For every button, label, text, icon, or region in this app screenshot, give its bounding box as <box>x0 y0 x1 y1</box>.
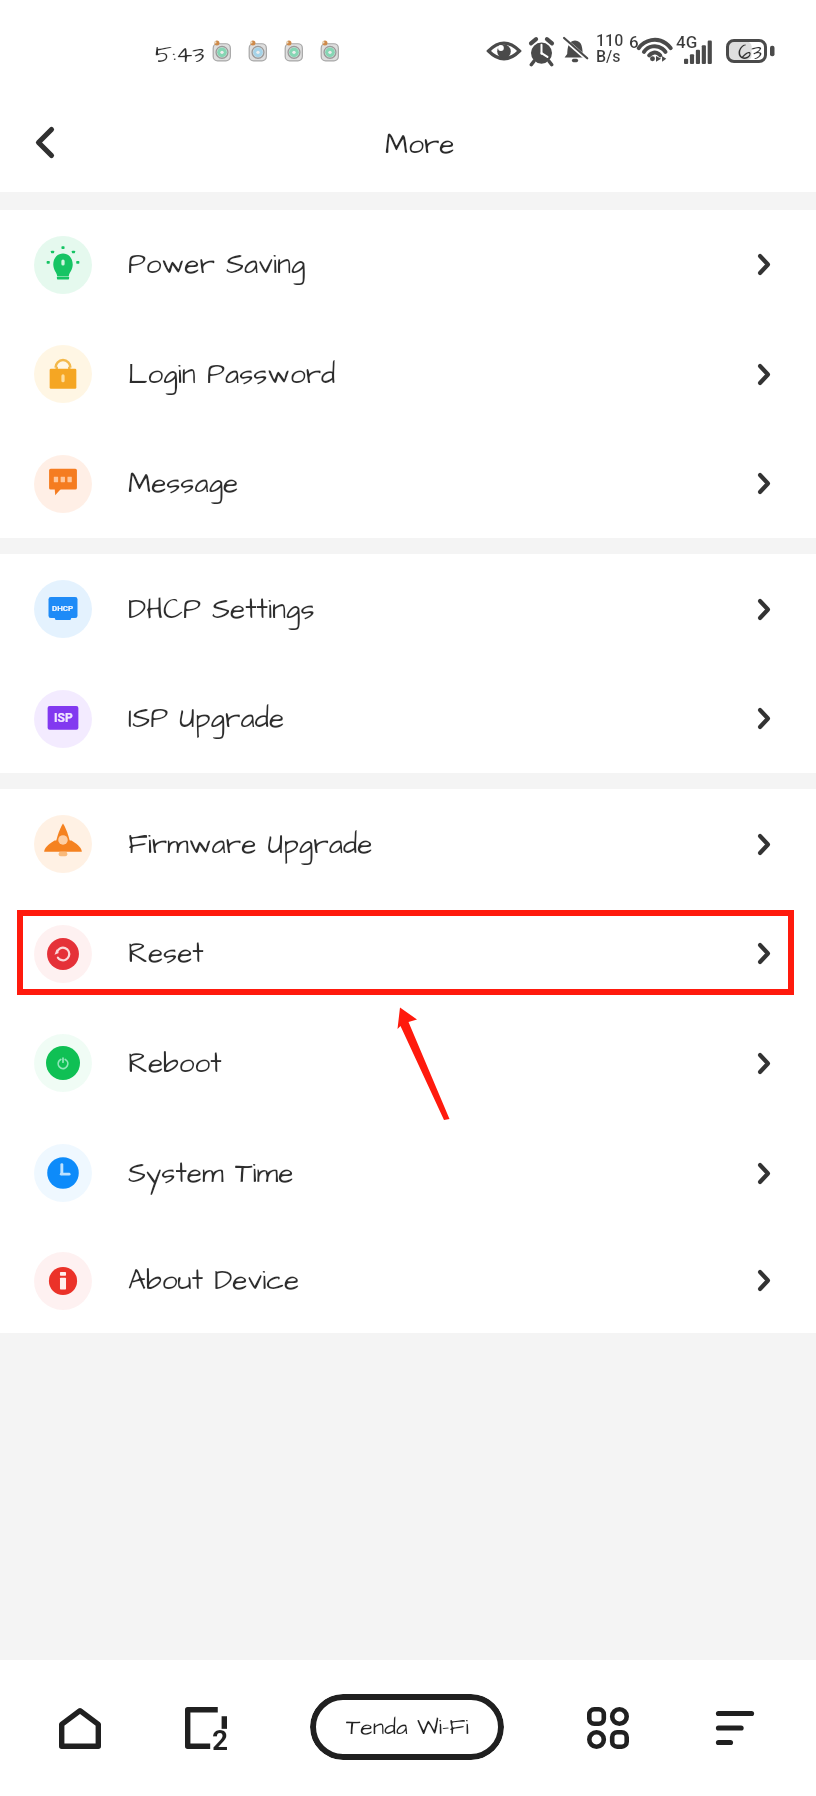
staticText: 4G <box>676 32 698 52</box>
staticText: System Time <box>128 1154 294 1193</box>
staticText: DHCP Settings <box>128 590 315 629</box>
button[interactable]: Apps <box>548 1682 668 1774</box>
button[interactable]: ISP <box>0 664 816 773</box>
button[interactable]: Tabs, 2 open <box>146 1682 266 1774</box>
staticText: B/s <box>596 47 621 66</box>
staticText: Firmware Upgrade <box>128 825 373 864</box>
staticText: ISP <box>54 711 73 725</box>
staticText: 110 <box>596 31 624 50</box>
button[interactable]: DHCP <box>0 554 816 664</box>
staticText: ISP Upgrade <box>128 699 285 738</box>
staticText: Power Saving <box>128 245 306 284</box>
staticText: Reboot <box>128 1044 222 1083</box>
button[interactable]: Tenda Wi-Fi <box>310 1694 504 1760</box>
staticText: Tenda Wi-Fi <box>346 1711 469 1743</box>
button[interactable]: About Device <box>0 1228 816 1333</box>
staticText: 63 <box>738 38 762 62</box>
button[interactable]: Login Password <box>0 319 816 429</box>
button[interactable]: Back <box>12 109 78 175</box>
button[interactable]: Menu <box>675 1682 795 1774</box>
staticText: DHCP <box>52 604 74 613</box>
staticText: More <box>385 125 455 164</box>
button[interactable]: Message <box>0 429 816 538</box>
button[interactable]: Reboot <box>0 1008 816 1118</box>
staticText: About Device <box>128 1261 300 1300</box>
button[interactable]: System Time <box>0 1118 816 1228</box>
staticText: Message <box>128 464 239 503</box>
staticText: 6 <box>629 32 639 52</box>
button[interactable]: Firmware Upgrade <box>0 789 816 899</box>
button[interactable]: Reset <box>0 899 816 1008</box>
staticText: Reset <box>128 934 204 973</box>
button[interactable]: Home <box>20 1682 140 1774</box>
staticText: 2 <box>212 1724 229 1757</box>
button[interactable]: Power Saving <box>0 210 816 319</box>
staticText: 5:43 <box>155 38 205 71</box>
staticText: Login Password <box>128 355 336 394</box>
